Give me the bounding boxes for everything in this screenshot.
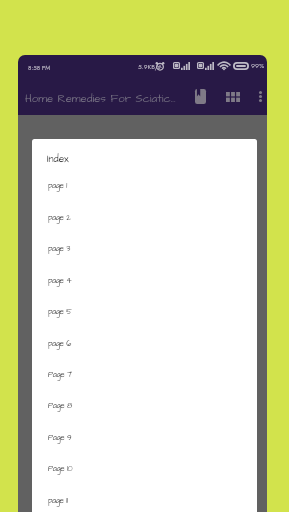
button[interactable]: page 5	[48, 306, 72, 317]
button[interactable]: page 4	[48, 275, 72, 286]
staticText: page 5	[48, 306, 72, 317]
button[interactable]: Bookmarks	[186, 82, 215, 111]
staticText: page 4	[48, 275, 72, 286]
button[interactable]: Grid view	[218, 82, 247, 111]
button[interactable]: Home Remedies For Sciatic...	[21, 82, 199, 116]
staticText: page 1	[48, 180, 67, 191]
button[interactable]: page 6	[48, 338, 71, 349]
button[interactable]: Page 9	[48, 432, 72, 443]
button[interactable]: Page 8	[48, 400, 72, 411]
button[interactable]: page 2	[48, 212, 71, 223]
staticText: page 3	[48, 243, 71, 254]
staticText: Index	[47, 152, 69, 166]
button[interactable]: Page 10	[48, 463, 73, 474]
button[interactable]: More options	[249, 85, 267, 107]
staticText: Page 7	[48, 369, 72, 380]
staticText: page 11	[48, 495, 68, 506]
staticText: Page 8	[48, 400, 72, 411]
staticText: Home Remedies For Sciatic...	[25, 91, 176, 107]
staticText: 5.9KB/s	[138, 62, 161, 72]
staticText: page 2	[48, 212, 71, 223]
staticText: 8:58 PM	[28, 63, 51, 72]
button[interactable]: page 3	[48, 243, 71, 254]
button[interactable]: Page 7	[48, 369, 72, 380]
staticText: Page 9	[48, 432, 72, 443]
staticText: Page 10	[48, 463, 73, 474]
staticText: page 6	[48, 338, 71, 349]
button[interactable]: Index	[47, 152, 69, 166]
button[interactable]: page 1	[48, 180, 67, 191]
staticText: 99%	[251, 61, 265, 71]
button[interactable]: page 11	[48, 495, 68, 506]
